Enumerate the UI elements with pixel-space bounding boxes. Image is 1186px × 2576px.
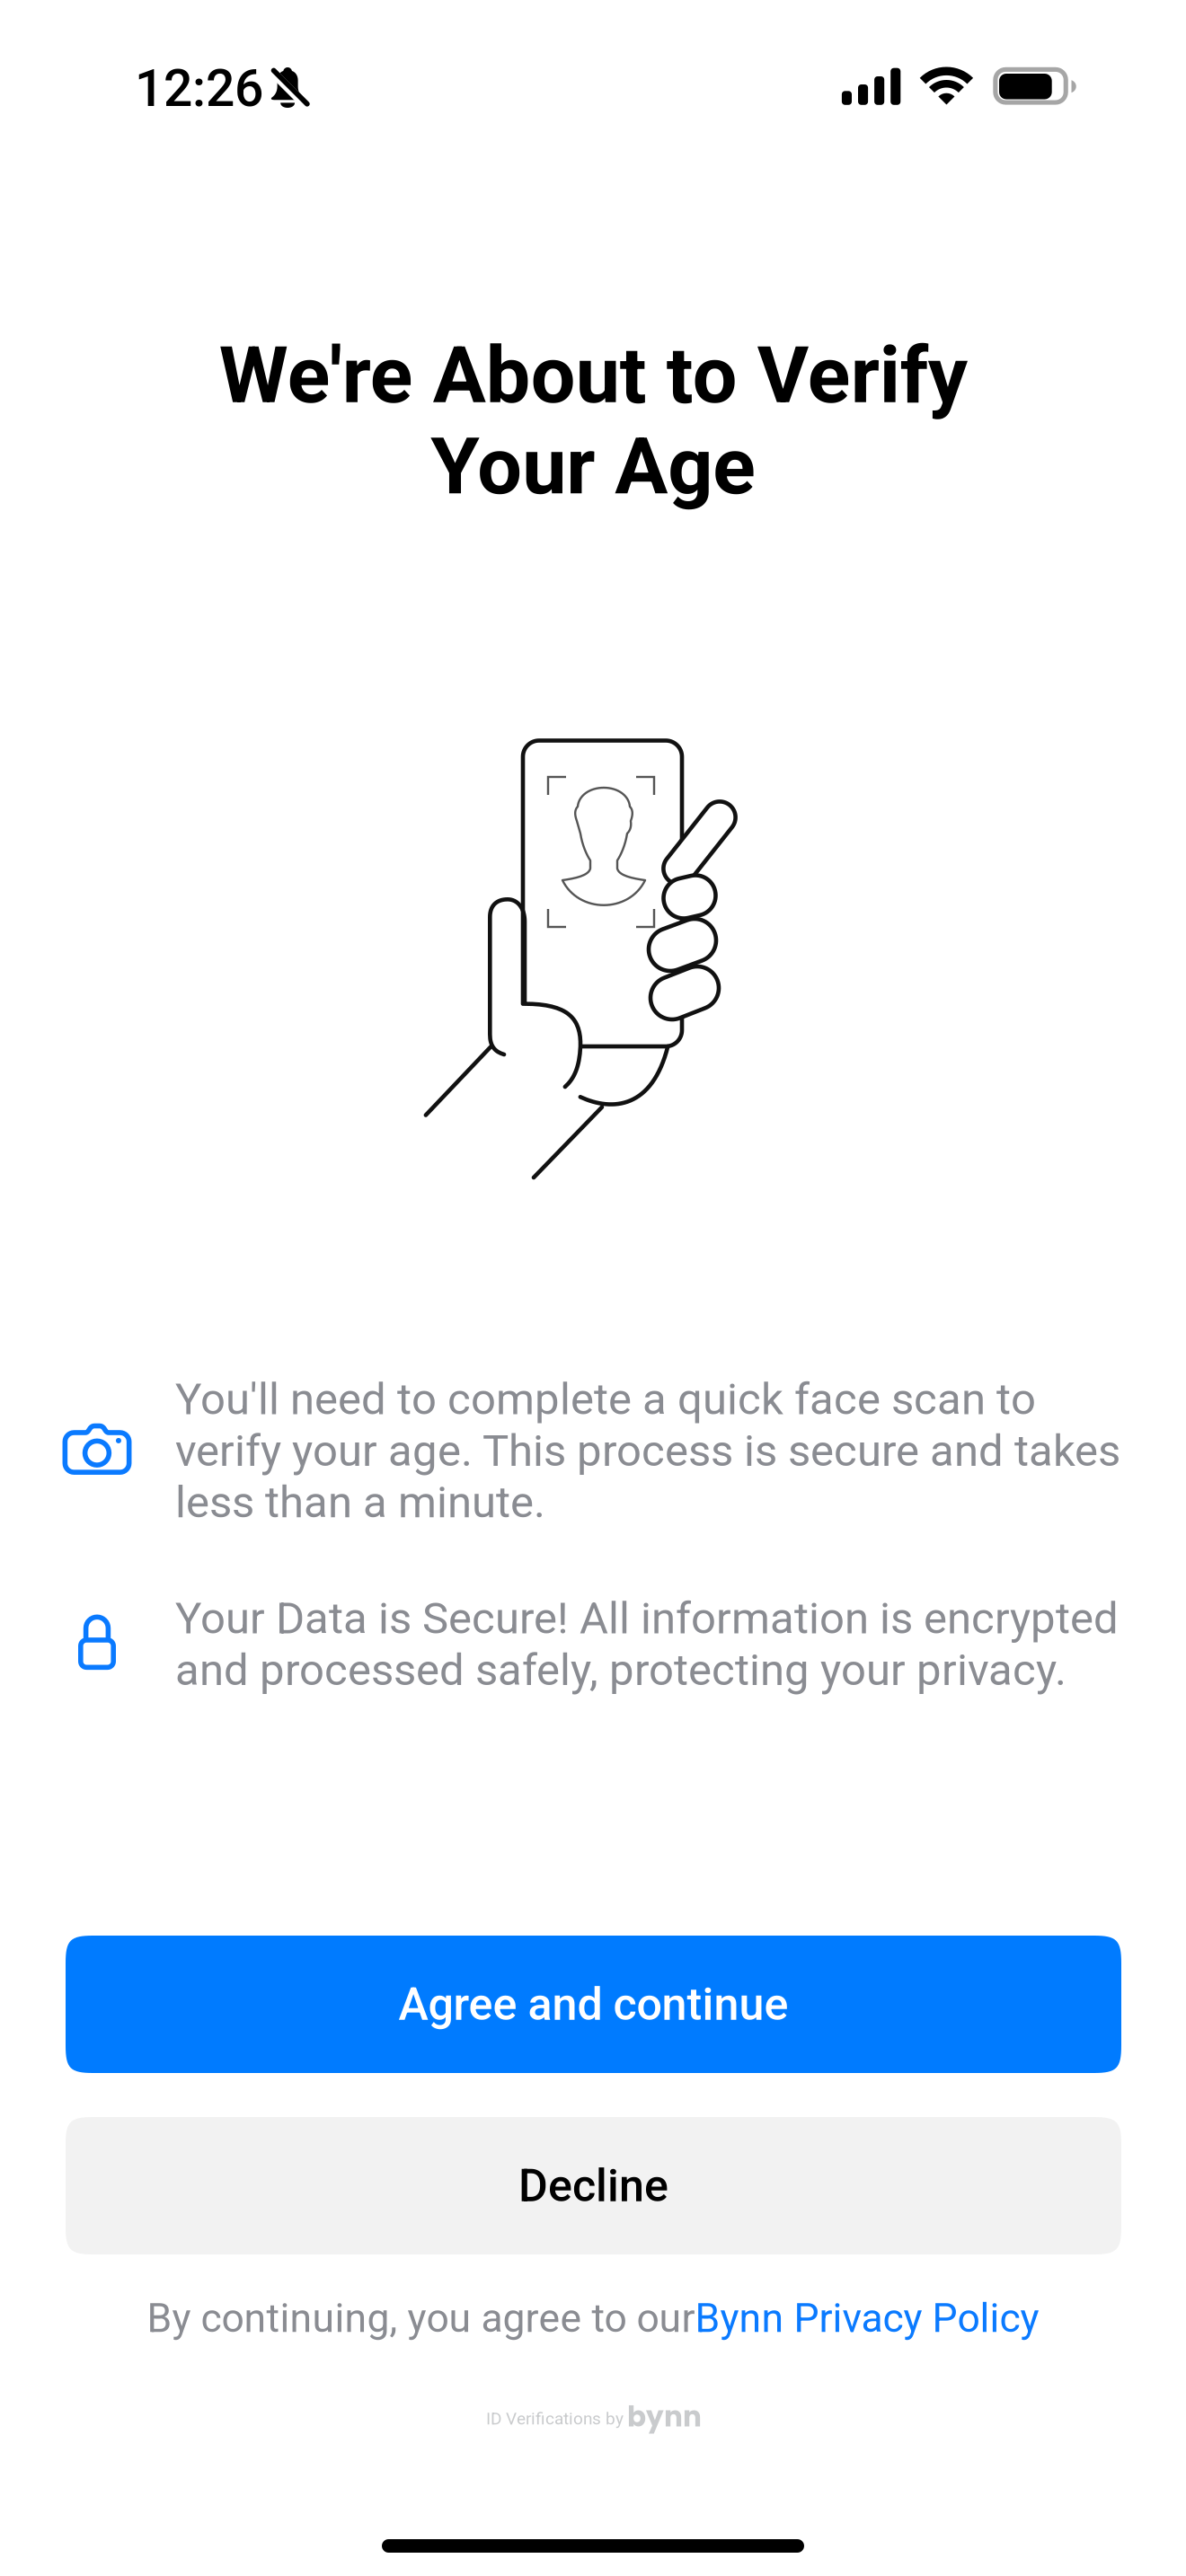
staticText: By continuing, you agree to our [147, 2295, 695, 2342]
button[interactable]: Bynn Privacy Policy [695, 2295, 1039, 2342]
staticText: Decline [518, 2159, 668, 2212]
staticText: Bynn Privacy Policy [695, 2295, 1039, 2342]
button[interactable]: Decline [66, 2117, 1121, 2254]
staticText: ID Verifications by [486, 2409, 624, 2429]
staticText: We're About to Verify Your Age [219, 329, 967, 513]
staticText: You'll need to complete a quick face sca… [175, 1373, 1120, 1528]
staticText: Your Data is Secure! All information is … [175, 1592, 1119, 1696]
button[interactable]: Agree and continue [66, 1936, 1121, 2073]
staticText: 12:26 [135, 58, 263, 118]
staticText: bynn [627, 2397, 702, 2436]
staticText: Agree and continue [398, 1978, 788, 2031]
